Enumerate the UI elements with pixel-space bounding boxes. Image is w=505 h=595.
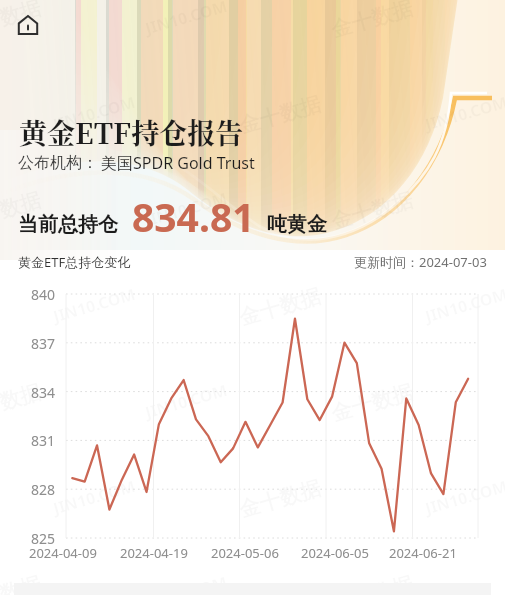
staticText: 公布机构： bbox=[18, 153, 98, 173]
staticText: 金十数据 bbox=[328, 0, 416, 43]
staticText: 2024-04-19 bbox=[120, 544, 188, 562]
staticText: 834.81 bbox=[132, 190, 255, 243]
staticText: JIN10.COM bbox=[143, 379, 230, 423]
button[interactable]: Home bbox=[12, 9, 44, 41]
staticText: JIN10.COM bbox=[143, 187, 230, 231]
staticText: 840 bbox=[31, 285, 56, 304]
staticText: 834 bbox=[31, 383, 56, 402]
staticText: JIN10.COM bbox=[423, 475, 505, 519]
staticText: 2024-04-09 bbox=[29, 544, 97, 562]
staticText: 金十数据 bbox=[0, 571, 44, 595]
staticText: JIN10.COM bbox=[143, 571, 230, 595]
staticText: 金十数据 bbox=[328, 379, 416, 427]
staticText: JIN10.COM bbox=[423, 91, 505, 135]
staticText: 831 bbox=[31, 431, 56, 450]
staticText: 828 bbox=[31, 480, 56, 499]
staticText: 2024-06-05 bbox=[301, 544, 369, 562]
staticText: 金十数据 bbox=[328, 571, 416, 595]
staticText: 黄金ETF总持仓变化 bbox=[18, 253, 131, 271]
staticText: 当前总持仓 bbox=[18, 212, 118, 237]
staticText: 825 bbox=[31, 529, 56, 548]
staticText: 金十数据 bbox=[0, 379, 44, 427]
staticText: JIN10.COM bbox=[51, 91, 138, 135]
staticText: 美国SPDR Gold Trust bbox=[101, 152, 255, 174]
staticText: 837 bbox=[31, 334, 56, 353]
staticText: JIN10.COM bbox=[143, 0, 230, 39]
staticText: 金十数据 bbox=[236, 91, 324, 139]
staticText: 2024-06-21 bbox=[389, 544, 457, 562]
staticText: JIN10.COM bbox=[51, 283, 138, 327]
staticText: JIN10.COM bbox=[51, 475, 138, 519]
staticText: 黄金ETF持仓报告 bbox=[19, 112, 244, 152]
staticText: 吨黄金 bbox=[267, 212, 327, 237]
staticText: 金十数据 bbox=[328, 187, 416, 235]
staticText: 2024-05-06 bbox=[211, 544, 279, 562]
staticText: 金十数据 bbox=[236, 475, 324, 523]
staticText: 金十数据 bbox=[236, 283, 324, 331]
staticText: 更新时间：2024-07-03 bbox=[354, 253, 487, 271]
staticText: 金十数据 bbox=[0, 187, 44, 235]
staticText: 金十数据 bbox=[0, 0, 44, 43]
